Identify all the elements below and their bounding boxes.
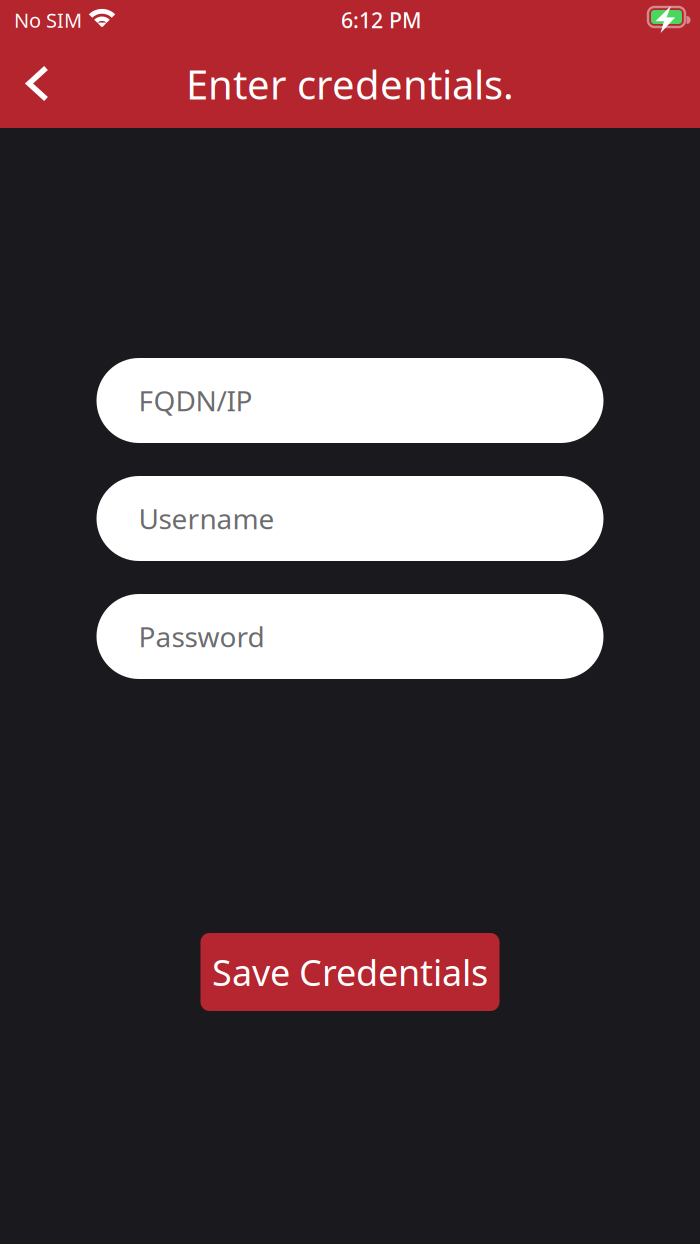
staticText: Enter credentials. <box>186 57 514 110</box>
button[interactable]: Password <box>96 594 603 679</box>
button[interactable]: Back <box>0 40 66 128</box>
staticText: Password <box>138 618 264 655</box>
staticText: FQDN/IP <box>138 382 252 419</box>
button[interactable]: FQDN/IP <box>96 358 603 443</box>
staticText: No SIM <box>14 7 82 33</box>
staticText: Username <box>138 500 274 537</box>
button[interactable]: Save Credentials <box>200 933 499 1011</box>
staticText: 6:12 PM <box>341 6 422 34</box>
staticText: Save Credentials <box>212 948 488 996</box>
button[interactable]: Username <box>96 476 603 561</box>
